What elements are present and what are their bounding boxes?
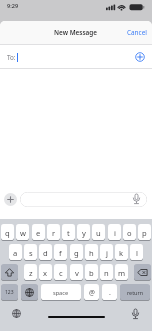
button[interactable]: f xyxy=(54,244,67,261)
staticText: To: xyxy=(7,53,16,62)
staticText: p xyxy=(142,228,147,238)
staticText: s xyxy=(29,248,33,258)
button[interactable]: w xyxy=(16,224,29,241)
button[interactable]: p xyxy=(138,224,151,241)
button[interactable]: d xyxy=(39,244,52,261)
button[interactable] xyxy=(21,284,38,301)
staticText: d xyxy=(43,248,48,258)
button[interactable]: n xyxy=(100,264,113,281)
button[interactable]: x xyxy=(39,264,52,281)
button[interactable] xyxy=(134,264,151,281)
staticText: a xyxy=(13,248,18,258)
staticText: v xyxy=(75,268,79,278)
staticText: l xyxy=(136,248,138,258)
button[interactable]: h xyxy=(85,244,98,261)
button[interactable]: y xyxy=(77,224,90,241)
staticText: . xyxy=(109,288,111,298)
button[interactable]: z xyxy=(24,264,37,281)
button[interactable]: g xyxy=(70,244,83,261)
button[interactable] xyxy=(20,192,147,207)
staticText: return xyxy=(127,289,143,296)
staticText: y xyxy=(82,228,86,238)
button[interactable]: u xyxy=(92,224,105,241)
button[interactable]: s xyxy=(24,244,37,261)
staticText: r xyxy=(52,228,56,238)
staticText: z xyxy=(29,268,33,278)
button[interactable]: Cancel xyxy=(127,28,147,37)
button[interactable]: space xyxy=(41,284,81,301)
staticText: @ xyxy=(89,288,95,297)
button[interactable]: i xyxy=(108,224,121,241)
button[interactable]: To: xyxy=(0,46,152,68)
button[interactable]: o xyxy=(123,224,136,241)
button[interactable]: return xyxy=(120,284,150,301)
staticText: 123 xyxy=(5,289,14,296)
button[interactable]: c xyxy=(54,264,67,281)
staticText: q xyxy=(5,228,10,238)
staticText: j xyxy=(106,248,108,258)
button[interactable]: e xyxy=(32,224,45,241)
staticText: t xyxy=(67,228,70,238)
staticText: k xyxy=(119,248,124,258)
staticText: o xyxy=(127,228,132,238)
button[interactable]: a xyxy=(9,244,22,261)
button[interactable]: l xyxy=(130,244,143,261)
button[interactable]: t xyxy=(62,224,75,241)
button[interactable]: q xyxy=(1,224,14,241)
button[interactable]: m xyxy=(115,264,128,281)
staticText: m xyxy=(118,268,126,278)
button[interactable]: b xyxy=(85,264,98,281)
staticText: b xyxy=(89,268,94,278)
staticText: n xyxy=(104,268,109,278)
button[interactable]: @ xyxy=(84,284,99,301)
button[interactable]: r xyxy=(47,224,60,241)
button[interactable]: k xyxy=(115,244,128,261)
staticText: f xyxy=(59,248,62,258)
staticText: i xyxy=(114,228,116,238)
button[interactable]: . xyxy=(102,284,117,301)
button[interactable]: 123 xyxy=(1,284,18,301)
staticText: x xyxy=(43,268,48,278)
button[interactable] xyxy=(1,264,18,281)
button[interactable] xyxy=(4,193,17,206)
staticText: w xyxy=(20,228,26,238)
staticText: u xyxy=(96,228,101,238)
staticText: e xyxy=(36,228,41,238)
staticText: New Message xyxy=(54,28,98,37)
staticText: Cancel xyxy=(127,28,147,37)
staticText: space xyxy=(53,289,69,297)
staticText: h xyxy=(89,248,94,258)
button[interactable]: j xyxy=(100,244,113,261)
staticText: g xyxy=(74,248,79,258)
button[interactable]: v xyxy=(70,264,83,281)
staticText: c xyxy=(59,268,63,278)
staticText: 9:29 xyxy=(7,2,19,10)
